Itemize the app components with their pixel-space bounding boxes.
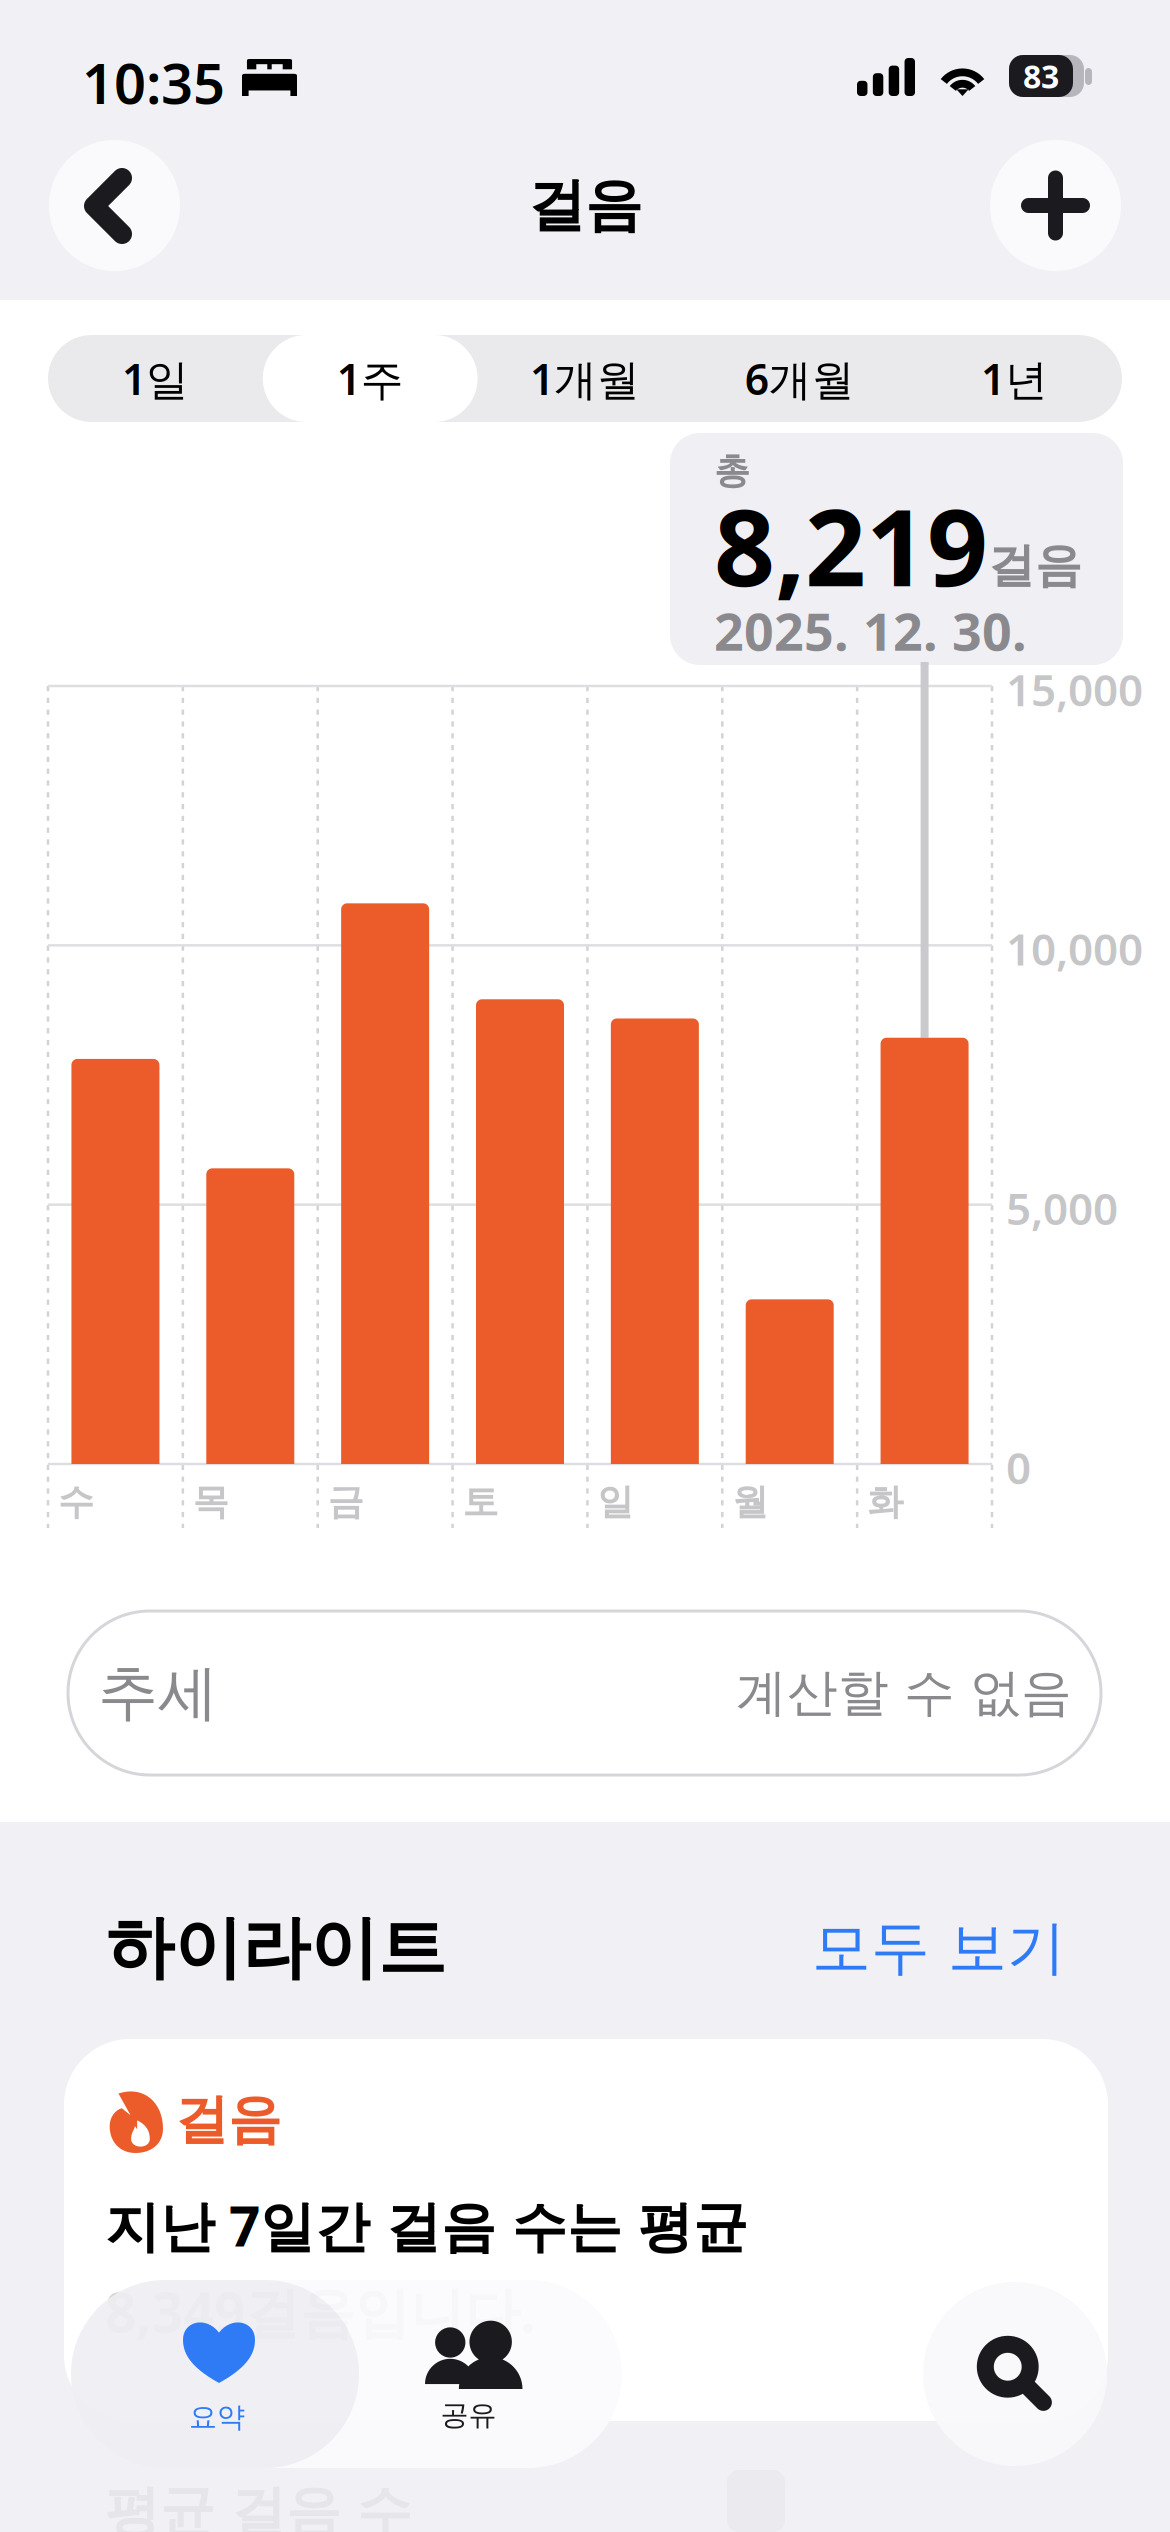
button[interactable]: 6개월 (692, 335, 907, 422)
staticText: 화 (867, 1480, 903, 1524)
staticText: 지난 7일간 걸음 수는 평균 (105, 2189, 748, 2262)
staticText: 2025. 12. 30. (714, 596, 1027, 665)
staticText: 6개월 (745, 350, 855, 407)
button[interactable]: 1일 (48, 335, 263, 422)
staticText: 8,219 (714, 474, 988, 616)
staticText: 수 (58, 1480, 94, 1524)
staticText: 요약 (189, 2400, 245, 2434)
staticText: 83 (1023, 55, 1059, 97)
staticText: 월 (732, 1480, 768, 1524)
staticText: 하이라이트 (106, 1906, 446, 1990)
button[interactable]: 1주 (263, 335, 478, 422)
button[interactable]: 1년 (907, 335, 1122, 422)
staticText: 1일 (122, 350, 189, 407)
staticText: 평균 걸음 수 (105, 2478, 412, 2532)
button[interactable]: 모두 보기 (812, 1912, 1066, 1984)
staticText: 1년 (981, 350, 1048, 407)
staticText: 걸음 (988, 537, 1082, 594)
button[interactable]: 추가 (990, 140, 1121, 271)
staticText: 1주 (337, 350, 404, 407)
staticText: 15,000 (1006, 660, 1143, 718)
staticText: 걸음 (175, 2087, 281, 2152)
button[interactable]: 1개월 (478, 335, 692, 422)
button[interactable]: 추세 (68, 1611, 1101, 1775)
staticText: 공유 (440, 2398, 496, 2432)
staticText: 계산할 수 없음 (736, 1662, 1072, 1724)
button[interactable]: 뒤로 (49, 140, 180, 271)
staticText: 5,000 (1006, 1179, 1118, 1237)
staticText: 10,000 (1006, 919, 1143, 978)
button[interactable]: 검색 (923, 2282, 1107, 2466)
button[interactable]: 걸음 (64, 2039, 1108, 2421)
button[interactable]: 요약 (71, 2280, 359, 2468)
staticText: 총 (714, 449, 750, 493)
staticText: 10:35 (82, 45, 225, 119)
staticText: 0 (1006, 1438, 1031, 1496)
staticText: 8,349걸음입니다. (105, 2275, 535, 2348)
button[interactable]: 공유 (359, 2280, 622, 2468)
staticText: 금 (328, 1480, 364, 1524)
staticText: 목 (193, 1480, 229, 1524)
staticText: 1개월 (530, 350, 640, 407)
staticText: 모두 보기 (812, 1912, 1066, 1984)
staticText: 추세 (98, 1656, 218, 1730)
staticText: 일 (597, 1480, 633, 1524)
staticText: 걸음 (528, 170, 642, 241)
staticText: 토 (463, 1480, 499, 1524)
